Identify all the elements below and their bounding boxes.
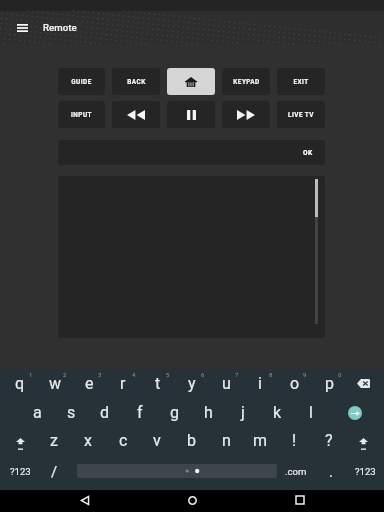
button[interactable]: Shift (3, 426, 37, 455)
button[interactable]: / (41, 457, 67, 486)
button[interactable]: Fast forward (222, 101, 270, 128)
staticText: KEYPAD (233, 78, 260, 86)
button[interactable]: f (123, 398, 157, 427)
button[interactable]: z (37, 426, 71, 455)
staticText: LIVE TV (288, 111, 314, 119)
staticText: q (15, 374, 25, 393)
button[interactable]: Enter (338, 398, 372, 427)
button[interactable]: h (191, 398, 225, 427)
button[interactable]: m (243, 426, 277, 455)
button[interactable]: Recent apps (276, 490, 324, 512)
button[interactable]: LIVE TV (277, 101, 325, 128)
button[interactable]: c (106, 426, 140, 455)
button[interactable]: q (3, 369, 37, 398)
button[interactable]: Shift (346, 426, 380, 455)
staticText: 2 (63, 371, 67, 378)
staticText: 8 (269, 371, 273, 378)
staticText: p (325, 374, 334, 393)
button[interactable]: u (209, 369, 243, 398)
staticText: c (119, 431, 128, 450)
staticText: BACK (127, 78, 146, 86)
button[interactable]: ? (312, 426, 346, 455)
button[interactable]: .com (278, 457, 314, 486)
staticText: f (137, 403, 143, 422)
staticText: ! (292, 431, 297, 450)
staticText: e (85, 374, 94, 393)
button[interactable]: EXIT (277, 68, 325, 95)
button[interactable]: b (174, 426, 208, 455)
staticText: 1 (29, 371, 33, 378)
button[interactable]: GUIDE (58, 68, 105, 95)
staticText: 7 (235, 371, 239, 378)
button[interactable]: d (88, 398, 122, 427)
button[interactable]: Open navigation menu (10, 16, 34, 40)
button[interactable]: BACK (112, 68, 160, 95)
staticText: y (188, 374, 196, 393)
button[interactable]: Backspace (346, 369, 380, 398)
staticText: ? (325, 431, 333, 450)
staticText: h (204, 403, 213, 422)
button[interactable]: e (72, 369, 106, 398)
staticText: 0 (338, 371, 342, 378)
staticText: 5 (166, 371, 170, 378)
staticText: 6 (201, 371, 205, 378)
staticText: 4 (132, 371, 136, 378)
button[interactable]: j (226, 398, 260, 427)
staticText: 3 (98, 371, 102, 378)
button[interactable]: r (106, 369, 140, 398)
button[interactable]: ?123 (347, 457, 383, 486)
button[interactable]: ! (277, 426, 311, 455)
button[interactable]: t (141, 369, 175, 398)
staticText: OK (303, 149, 313, 157)
staticText: s (67, 403, 76, 422)
staticText: . (329, 463, 333, 481)
staticText: / (51, 463, 58, 481)
staticText: u (222, 374, 231, 393)
staticText: n (222, 431, 231, 450)
button[interactable]: a (20, 398, 54, 427)
staticText: .com (285, 466, 307, 477)
staticText: w (49, 374, 62, 393)
button[interactable]: i (243, 369, 277, 398)
button[interactable]: INPUT (58, 101, 105, 128)
staticText: Remote (43, 22, 77, 33)
button[interactable]: v (140, 426, 174, 455)
staticText: ?123 (355, 466, 376, 477)
staticText: a (33, 403, 42, 422)
button[interactable]: Home (168, 490, 216, 512)
staticText: d (100, 403, 110, 422)
button[interactable]: n (209, 426, 243, 455)
staticText: INPUT (71, 111, 92, 119)
staticText: EXIT (293, 78, 309, 86)
button[interactable]: Back (61, 490, 109, 512)
button[interactable]: Pause (167, 101, 215, 128)
button[interactable]: KEYPAD (222, 68, 270, 95)
button[interactable]: p (312, 369, 346, 398)
button[interactable]: o (278, 369, 312, 398)
staticText: l (309, 403, 313, 422)
staticText: o (290, 374, 300, 393)
staticText: i (258, 374, 262, 393)
button[interactable]: Rewind (112, 101, 160, 128)
staticText: k (273, 403, 282, 422)
staticText: g (170, 403, 179, 422)
button[interactable]: y (175, 369, 209, 398)
button[interactable]: Home (167, 68, 215, 95)
button[interactable]: OK (58, 140, 325, 165)
button[interactable]: x (71, 426, 105, 455)
staticText: t (155, 374, 161, 393)
button[interactable]: w (38, 369, 72, 398)
staticText: ?123 (10, 466, 31, 477)
staticText: j (241, 403, 245, 422)
button[interactable]: l (294, 398, 328, 427)
staticText: v (153, 431, 161, 450)
button[interactable]: g (157, 398, 191, 427)
button[interactable]: k (260, 398, 294, 427)
staticText: z (50, 431, 58, 450)
button[interactable]: Space (77, 464, 277, 478)
staticText: x (84, 431, 92, 450)
button[interactable]: . (318, 457, 344, 486)
button[interactable]: ?123 (0, 457, 40, 486)
staticText: GUIDE (71, 78, 92, 86)
button[interactable]: s (54, 398, 88, 427)
